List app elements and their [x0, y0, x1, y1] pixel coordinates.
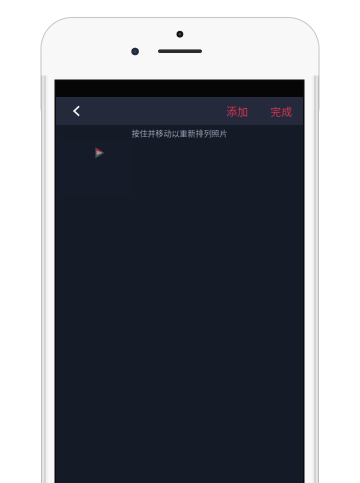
button[interactable]: 添加	[219, 97, 255, 125]
staticText: 添加	[226, 103, 248, 119]
button[interactable]: 返回	[56, 97, 102, 125]
staticText: 完成	[270, 103, 292, 119]
button[interactable]: 完成	[263, 97, 299, 125]
staticText: 按住并移动以重新排列照片	[131, 127, 227, 139]
